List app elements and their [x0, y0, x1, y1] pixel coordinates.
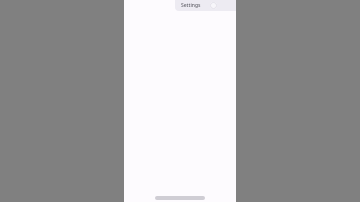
staticText: Settings [181, 2, 201, 9]
button[interactable]: Account [210, 2, 217, 9]
button[interactable]: Home gesture bar [155, 196, 205, 200]
button[interactable]: Settings [175, 0, 236, 11]
